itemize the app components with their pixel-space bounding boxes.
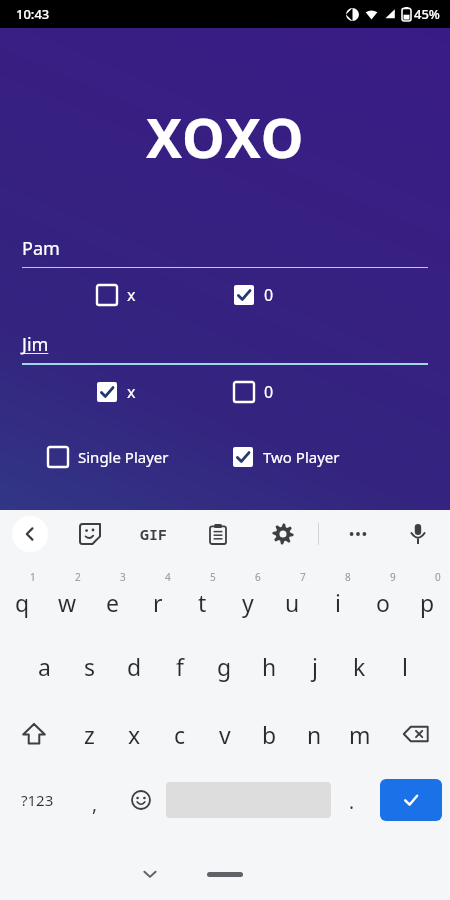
button[interactable]: Shift	[0, 700, 67, 768]
button[interactable]: n	[292, 700, 337, 768]
staticText: 3	[120, 570, 126, 584]
button[interactable]: .	[331, 768, 372, 832]
button[interactable]: f	[157, 632, 202, 700]
button[interactable]: Emoji	[115, 768, 166, 832]
button[interactable]: x	[112, 700, 157, 768]
staticText: 0	[264, 381, 274, 403]
staticText: 10:43	[16, 5, 50, 23]
button[interactable]: c	[157, 700, 202, 768]
button[interactable]: x	[97, 381, 136, 403]
staticText: 9	[390, 570, 396, 584]
button[interactable]: More options	[340, 516, 376, 552]
button[interactable]: Settings	[265, 516, 301, 552]
staticText: v	[219, 719, 231, 750]
staticText: Single Player	[78, 447, 169, 467]
button[interactable]: 6	[225, 564, 270, 632]
staticText: t	[198, 587, 207, 618]
other: Enter	[380, 779, 442, 821]
button[interactable]: d	[112, 632, 157, 700]
staticText: 0	[435, 570, 441, 584]
button[interactable]: Home	[207, 872, 243, 877]
button[interactable]: 0	[234, 381, 274, 403]
button[interactable]: Back	[12, 516, 48, 552]
button[interactable]: z	[67, 700, 112, 768]
button[interactable]: Voice input	[400, 516, 436, 552]
button[interactable]: g	[202, 632, 247, 700]
button[interactable]: 2	[45, 564, 90, 632]
button[interactable]: Hide keyboard	[130, 854, 170, 894]
staticText: 8	[345, 570, 351, 584]
button[interactable]: l	[382, 632, 427, 700]
staticText: XOXO	[146, 100, 305, 174]
staticText: h	[262, 651, 277, 682]
button[interactable]: 0	[405, 564, 450, 632]
button[interactable]: 5	[180, 564, 225, 632]
button[interactable]: 8	[315, 564, 360, 632]
staticText: x	[127, 381, 136, 403]
button[interactable]: 9	[360, 564, 405, 632]
button[interactable]: x	[97, 284, 136, 306]
button[interactable]: 0	[234, 284, 274, 306]
staticText: GIF	[140, 524, 168, 544]
staticText: g	[217, 651, 232, 682]
staticText: 6	[255, 570, 261, 584]
staticText: k	[353, 651, 366, 682]
button[interactable]: Jim	[22, 332, 49, 357]
staticText: b	[262, 719, 277, 750]
staticText: ?123	[21, 790, 54, 810]
staticText: x	[128, 719, 141, 750]
button[interactable]: Two Player	[233, 447, 373, 467]
staticText: i	[335, 587, 341, 618]
staticText: 0	[264, 284, 274, 306]
staticText: 7	[300, 570, 306, 584]
button[interactable]: Clipboard	[200, 516, 236, 552]
button[interactable]: Pam	[22, 236, 60, 261]
staticText: n	[307, 719, 322, 750]
button[interactable]: m	[337, 700, 382, 768]
staticText: m	[349, 719, 371, 750]
staticText: l	[402, 651, 408, 682]
staticText: u	[285, 587, 300, 618]
staticText: f	[176, 651, 184, 682]
button[interactable]: k	[337, 632, 382, 700]
button[interactable]: a	[22, 632, 67, 700]
staticText: x	[127, 284, 136, 306]
staticText: 4	[165, 570, 171, 584]
staticText: j	[312, 651, 318, 682]
button[interactable]	[380, 779, 442, 821]
button[interactable]: ?123	[0, 768, 74, 832]
staticText: s	[84, 651, 96, 682]
button[interactable]: 1	[0, 564, 45, 632]
staticText: 5	[210, 570, 216, 584]
button[interactable]: 4	[135, 564, 180, 632]
staticText: q	[15, 587, 30, 618]
button[interactable]: v	[202, 700, 247, 768]
staticText: 1	[30, 570, 36, 584]
button[interactable]: s	[67, 632, 112, 700]
button[interactable]: h	[247, 632, 292, 700]
button[interactable]: Single Player	[48, 447, 188, 467]
button[interactable]: GIF	[134, 514, 174, 554]
staticText: w	[58, 587, 77, 618]
staticText: p	[420, 587, 435, 618]
staticText: z	[84, 719, 95, 750]
staticText: r	[153, 587, 163, 618]
staticText: d	[127, 651, 142, 682]
staticText: Two Player	[263, 447, 340, 467]
staticText: a	[38, 651, 51, 682]
button[interactable]: Stickers	[72, 516, 108, 552]
button[interactable]: 7	[270, 564, 315, 632]
button[interactable]: 3	[90, 564, 135, 632]
button[interactable]: b	[247, 700, 292, 768]
button[interactable]: ,	[74, 768, 115, 832]
staticText: o	[376, 587, 390, 618]
staticText: e	[106, 587, 119, 618]
button[interactable]: j	[292, 632, 337, 700]
staticText: .	[349, 789, 355, 815]
staticText: 45%	[414, 5, 440, 23]
staticText: 2	[75, 570, 81, 584]
button[interactable]: Backspace	[382, 700, 450, 768]
staticText: c	[174, 719, 186, 750]
